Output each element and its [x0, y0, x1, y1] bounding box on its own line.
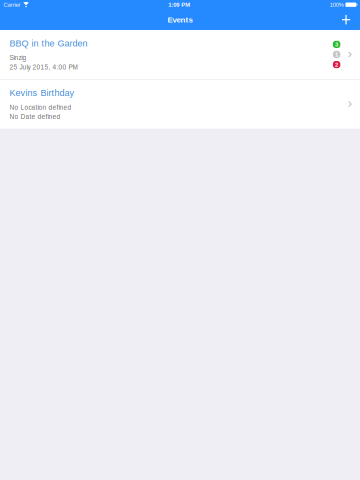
button[interactable]: BBQ in the Garden	[0, 30, 360, 79]
staticText: 25 July 2015, 4:00 PM	[10, 64, 78, 71]
staticText: No Date defined	[10, 113, 61, 120]
staticText: 3	[335, 41, 338, 48]
staticText: Events	[167, 15, 192, 24]
button[interactable]: Kevins Birthday	[0, 80, 360, 129]
staticText: 1:09 PM	[168, 1, 190, 8]
staticText: Kevins Birthday	[10, 88, 75, 98]
staticText: 100%	[330, 1, 344, 8]
staticText: Sinzig	[10, 54, 27, 61]
staticText: No Location defined	[10, 104, 72, 111]
staticText: Carrier	[4, 1, 21, 8]
staticText: BBQ in the Garden	[10, 38, 88, 48]
staticText: 2	[335, 61, 338, 68]
button[interactable]: Add event	[334, 9, 358, 30]
staticText: 1	[335, 51, 338, 58]
